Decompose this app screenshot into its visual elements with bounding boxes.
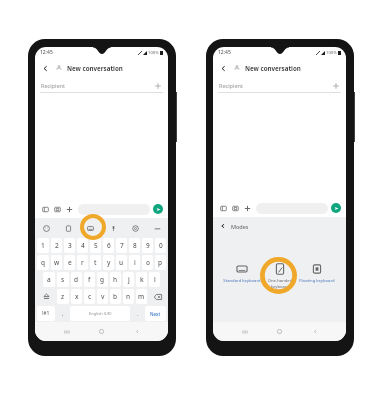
button[interactable]: 8 <box>129 238 140 253</box>
button[interactable]: English (UK) <box>70 306 130 321</box>
button[interactable]: l <box>149 272 160 287</box>
button[interactable]: Next <box>145 306 166 321</box>
staticText: New conversation <box>67 64 123 72</box>
staticText: z <box>61 292 65 301</box>
button[interactable]: i <box>129 255 140 270</box>
staticText: 9 <box>146 241 150 250</box>
staticText: a <box>47 275 51 284</box>
button[interactable]: w <box>51 255 62 270</box>
button[interactable]: q <box>37 255 49 270</box>
button[interactable]: Camera <box>52 204 62 214</box>
button[interactable]: m <box>136 289 147 304</box>
button[interactable]: Gallery <box>40 204 50 214</box>
button[interactable]: y <box>103 255 114 270</box>
button[interactable]: Collapse <box>152 223 162 233</box>
button[interactable]: 7 <box>116 238 127 253</box>
button[interactable] <box>78 204 150 215</box>
button[interactable]: Shift <box>37 289 55 304</box>
button[interactable]: t <box>90 255 101 270</box>
staticText: 100% <box>148 50 159 56</box>
button[interactable]: Recents <box>62 327 71 336</box>
button[interactable]: Back <box>218 221 228 231</box>
staticText: m <box>138 292 145 301</box>
button[interactable]: One-handed keyboard <box>258 263 302 289</box>
button[interactable]: v <box>97 289 108 304</box>
button[interactable]: More options <box>64 204 74 214</box>
staticText: v <box>101 292 105 301</box>
staticText: o <box>146 258 150 267</box>
button[interactable]: Standard keyboard <box>220 263 264 284</box>
staticText: c <box>88 292 92 301</box>
button[interactable]: Comma <box>57 306 68 321</box>
staticText: 4 <box>81 241 85 250</box>
button[interactable]: Settings <box>130 223 140 233</box>
button[interactable]: 6 <box>103 238 114 253</box>
button[interactable]: x <box>71 289 82 304</box>
button[interactable]: f <box>84 272 95 287</box>
button[interactable]: Voice input <box>108 223 118 233</box>
button[interactable]: Add recipient <box>154 82 162 90</box>
staticText: 8 <box>133 241 137 250</box>
button[interactable]: b <box>110 289 121 304</box>
button[interactable]: g <box>97 272 108 287</box>
button[interactable]: Camera <box>230 203 240 213</box>
button[interactable]: d <box>71 272 82 287</box>
staticText: New conversation <box>245 64 301 72</box>
button[interactable]: More options <box>242 203 252 213</box>
button[interactable]: k <box>136 272 147 287</box>
button[interactable]: Back <box>40 63 50 73</box>
button[interactable]: Floating keyboard <box>295 263 339 284</box>
button[interactable]: Add recipient <box>332 82 340 90</box>
staticText: l <box>154 275 156 284</box>
staticText: e <box>68 258 72 267</box>
button[interactable]: Keyboard modes <box>85 223 95 233</box>
button[interactable]: n <box>123 289 134 304</box>
button[interactable]: j <box>123 272 134 287</box>
button[interactable]: Recents <box>240 327 249 336</box>
button[interactable]: Back <box>218 63 228 73</box>
button[interactable]: Home <box>275 327 284 336</box>
staticText: 3 <box>68 241 72 250</box>
button[interactable]: !#1 <box>37 306 55 321</box>
button[interactable]: 0 <box>155 238 166 253</box>
staticText: 12:45 <box>40 49 53 56</box>
button[interactable]: 5 <box>90 238 101 253</box>
button[interactable]: Home <box>97 327 106 336</box>
button[interactable]: Send <box>331 203 341 213</box>
button[interactable]: r <box>77 255 88 270</box>
button[interactable]: 2 <box>51 238 62 253</box>
button[interactable]: a <box>43 272 55 287</box>
staticText: 100% <box>326 50 337 56</box>
button[interactable]: Gallery <box>218 203 228 213</box>
button[interactable]: z <box>57 289 69 304</box>
staticText: 2 <box>55 241 59 250</box>
staticText: 0 <box>159 241 163 250</box>
staticText: 7 <box>120 241 124 250</box>
button[interactable]: 9 <box>142 238 153 253</box>
button[interactable]: p <box>155 255 166 270</box>
button[interactable]: 1 <box>37 238 49 253</box>
button[interactable]: Delete <box>149 289 166 304</box>
staticText: 5 <box>94 241 98 250</box>
button[interactable]: Clipboard <box>63 223 73 233</box>
button[interactable]: Period <box>132 306 143 321</box>
staticText: u <box>119 258 124 267</box>
button[interactable]: 4 <box>77 238 88 253</box>
staticText: x <box>75 292 79 301</box>
button[interactable]: Back <box>133 327 142 336</box>
staticText: g <box>100 275 105 284</box>
button[interactable]: u <box>116 255 127 270</box>
staticText: n <box>126 292 131 301</box>
staticText: 6 <box>107 241 111 250</box>
button[interactable]: c <box>84 289 95 304</box>
button[interactable]: 3 <box>64 238 75 253</box>
button[interactable]: s <box>57 272 69 287</box>
button[interactable]: h <box>110 272 121 287</box>
button[interactable]: o <box>142 255 153 270</box>
button[interactable]: e <box>64 255 75 270</box>
button[interactable]: Send <box>153 204 163 214</box>
staticText: Modes <box>231 223 249 230</box>
button[interactable]: Back <box>311 327 320 336</box>
button[interactable]: Emoji <box>41 223 51 233</box>
